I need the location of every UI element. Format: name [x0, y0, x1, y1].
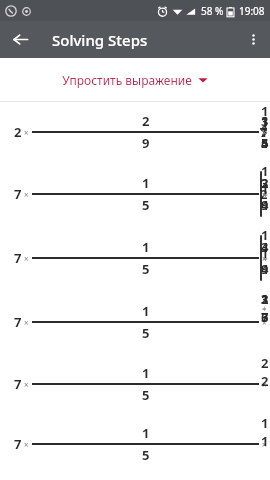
staticText: 1 — [142, 174, 150, 192]
staticText: 7 — [14, 435, 22, 453]
staticText: 5 — [142, 260, 150, 278]
staticText: 9 — [142, 134, 150, 152]
staticText: 2 — [14, 123, 22, 141]
staticText: 1 — [142, 238, 150, 256]
button[interactable]: 7 — [0, 354, 270, 414]
staticText: 1 — [142, 424, 150, 442]
button[interactable]: 7 — [0, 290, 270, 354]
staticText: Упростить выражение — [62, 72, 192, 88]
staticText: 58 % — [201, 4, 224, 18]
button[interactable]: More options — [236, 21, 270, 58]
button[interactable]: 7 — [0, 162, 270, 226]
staticText: 5 — [142, 386, 150, 404]
staticText: 2 — [142, 112, 150, 130]
button[interactable]: Упростить выражение — [0, 58, 270, 101]
staticText: 5 — [142, 324, 150, 342]
staticText: 1 — [142, 302, 150, 320]
staticText: 19:08 — [239, 4, 265, 18]
staticText: × — [24, 317, 29, 328]
button[interactable]: Back — [0, 21, 40, 58]
staticText: × — [24, 127, 29, 138]
staticText: 5 — [142, 196, 150, 214]
staticText: 7 — [14, 185, 22, 203]
button[interactable]: 7 — [0, 414, 270, 474]
button[interactable]: 7 — [0, 226, 270, 290]
staticText: 7 — [14, 249, 22, 267]
button[interactable]: 2 — [0, 102, 270, 162]
staticText: × — [24, 253, 29, 264]
staticText: × — [24, 379, 29, 390]
staticText: 7 — [14, 375, 22, 393]
staticText: Solving Steps — [52, 30, 148, 50]
staticText: 5 — [142, 446, 150, 464]
staticText: 7 — [14, 313, 22, 331]
staticText: × — [24, 189, 29, 200]
staticText: × — [24, 439, 29, 450]
staticText: 1 — [142, 364, 150, 382]
